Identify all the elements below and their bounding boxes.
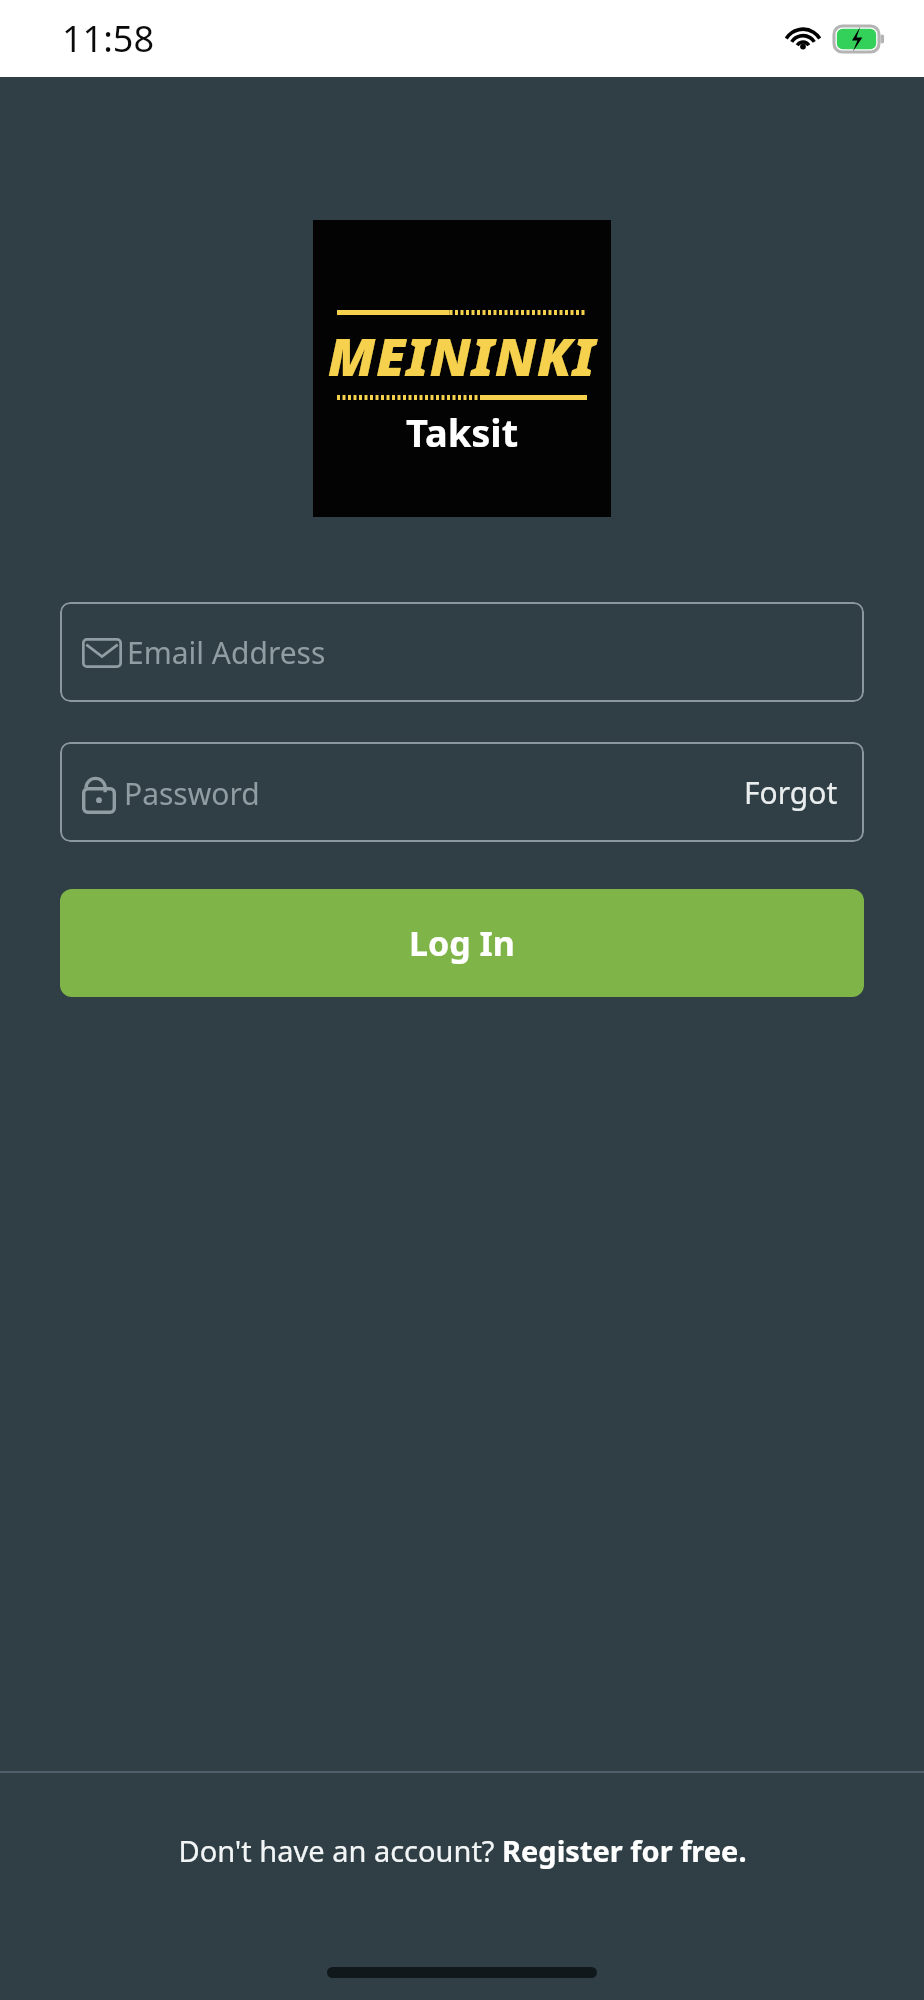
staticText: Password xyxy=(124,773,260,814)
staticText: Forgot xyxy=(744,772,838,813)
button[interactable]: Password xyxy=(82,772,738,814)
other: Password xyxy=(82,772,116,814)
button[interactable]: Forgot xyxy=(738,766,844,819)
staticText: Taksit xyxy=(406,406,519,458)
button[interactable]: Log In xyxy=(60,889,864,997)
button[interactable]: Don't have an account? Register for free… xyxy=(0,1773,924,1928)
other: Email xyxy=(82,638,122,668)
staticText: 11:58 xyxy=(62,14,155,63)
staticText: Log In xyxy=(409,920,515,966)
staticText: Don't have an account? Register for free… xyxy=(178,1831,747,1870)
button[interactable]: Email xyxy=(60,602,864,702)
staticText: MEININKI xyxy=(328,320,596,391)
staticText: Email Address xyxy=(127,632,326,673)
